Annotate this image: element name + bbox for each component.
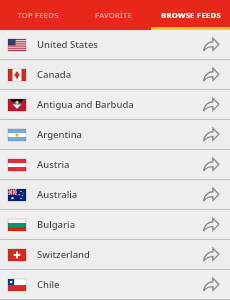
button[interactable]: Argentina: [0, 120, 230, 149]
button[interactable]: Austria: [0, 150, 230, 179]
button[interactable]: Share Chile: [200, 274, 222, 296]
button[interactable]: Switzerland: [0, 240, 230, 269]
button[interactable]: Share Argentina: [200, 124, 222, 146]
staticText: Argentina: [37, 128, 200, 141]
button[interactable]: Share Canada: [200, 64, 222, 86]
button[interactable]: Antigua and Barbuda: [0, 90, 230, 119]
button[interactable]: Canada: [0, 60, 230, 89]
staticText: Canada: [37, 68, 200, 81]
button[interactable]: Share Austria: [200, 154, 222, 176]
button[interactable]: Share Switzerland: [200, 244, 222, 266]
staticText: Bulgaria: [37, 218, 200, 231]
button[interactable]: Bulgaria: [0, 210, 230, 239]
button[interactable]: Share United States: [200, 34, 222, 56]
button[interactable]: TOP FEEDS: [0, 0, 76, 30]
button[interactable]: FAVORİTE: [76, 0, 151, 30]
button[interactable]: BROWSE FEEDS: [151, 0, 230, 30]
staticText: FAVORİTE: [95, 10, 132, 20]
staticText: Australia: [37, 188, 200, 201]
staticText: Switzerland: [37, 248, 200, 261]
staticText: Antigua and Barbuda: [37, 98, 200, 111]
button[interactable]: United States: [0, 30, 230, 59]
staticText: United States: [37, 38, 200, 51]
staticText: Chile: [37, 278, 200, 291]
button[interactable]: Share Bulgaria: [200, 214, 222, 236]
staticText: BROWSE FEEDS: [161, 10, 221, 20]
staticText: TOP FEEDS: [17, 10, 59, 20]
button[interactable]: Share Australia: [200, 184, 222, 206]
button[interactable]: Australia: [0, 180, 230, 209]
staticText: Austria: [37, 158, 200, 171]
button[interactable]: Chile: [0, 270, 230, 299]
button[interactable]: Share Antigua and Barbuda: [200, 94, 222, 116]
